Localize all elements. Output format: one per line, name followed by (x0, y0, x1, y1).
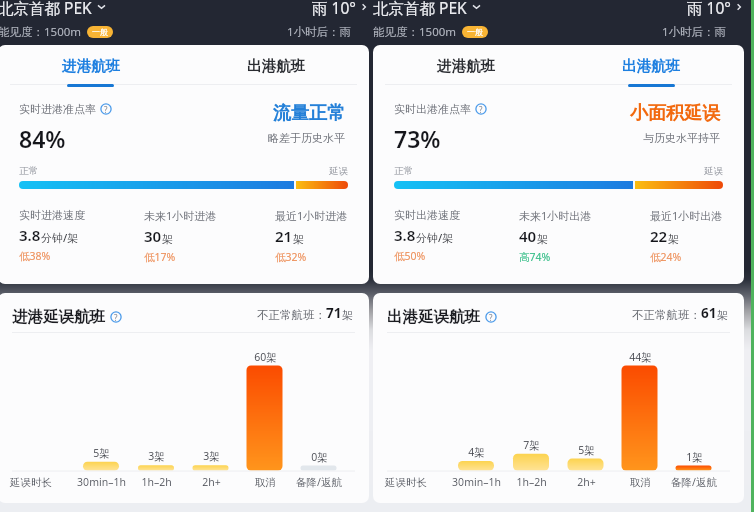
staticText: ? (479, 104, 483, 115)
staticText: 架 (537, 232, 548, 246)
staticText: 实时出港准点率 (394, 102, 471, 116)
staticText: 30min–1h (77, 475, 126, 489)
staticText: 0架 (311, 450, 328, 464)
staticText: 低38% (19, 249, 51, 263)
staticText: 能见度：1500m (373, 24, 457, 39)
staticText: 分钟/架 (416, 230, 454, 245)
staticText: 一般 (467, 27, 483, 37)
staticText: 3架 (203, 449, 220, 463)
staticText: 未来1小时出港 (519, 208, 592, 223)
staticText: 架 (162, 232, 173, 246)
staticText: 分钟/架 (41, 230, 79, 245)
staticText: 延误时长 (385, 476, 427, 489)
button[interactable]: 雨 10° (687, 0, 744, 16)
staticText: 取消 (630, 476, 651, 489)
staticText: ? (104, 104, 108, 115)
staticText: 低50% (394, 249, 426, 263)
staticText: 高74% (519, 250, 551, 264)
staticText: 1小时后：雨 (287, 24, 352, 39)
staticText: 低24% (650, 250, 682, 264)
button[interactable]: 进港航班 (373, 45, 558, 87)
staticText: 备降/返航 (671, 475, 717, 489)
staticText: 雨 10° (687, 0, 731, 16)
button[interactable]: 出港航班 (558, 45, 744, 87)
staticText: 与历史水平持平 (643, 131, 720, 145)
staticText: 进港延误航班 (12, 307, 105, 327)
staticText: 出港航班 (247, 57, 305, 75)
staticText: 60架 (254, 350, 277, 364)
button[interactable]: 雨 10° (312, 0, 369, 16)
staticText: 实时出港速度 (394, 208, 460, 222)
staticText: 小面积延误 (630, 102, 720, 125)
staticText: 延误 (704, 165, 723, 177)
staticText: 84% (19, 123, 66, 154)
staticText: 备降/返航 (296, 475, 342, 489)
staticText: 能见度：1500m (0, 24, 82, 39)
staticText: 出港延误航班 (387, 307, 480, 327)
staticText: 延误 (329, 165, 348, 177)
staticText: 30min–1h (452, 475, 501, 489)
staticText: 雨 10° (312, 0, 356, 16)
staticText: 3架 (148, 449, 165, 463)
staticText: 北京首都 PEK (0, 0, 92, 16)
staticText: ? (489, 312, 493, 323)
button[interactable]: 说明 (100, 103, 112, 115)
staticText: 1架 (686, 450, 703, 464)
staticText: 进港航班 (437, 57, 495, 75)
staticText: 正常 (394, 165, 413, 177)
staticText: 实时进港准点率 (19, 102, 96, 116)
staticText: 最近1小时进港 (275, 208, 348, 223)
staticText: 5架 (93, 446, 110, 460)
staticText: 最近1小时出港 (650, 208, 723, 223)
button[interactable]: 说明 (485, 311, 497, 323)
staticText: 5架 (578, 443, 595, 457)
staticText: 1小时后：雨 (662, 24, 727, 39)
staticText: 73% (394, 123, 441, 154)
staticText: 实时进港速度 (19, 208, 85, 222)
staticText: 61 (701, 304, 717, 322)
staticText: 出港航班 (622, 57, 680, 75)
button[interactable]: 说明 (110, 311, 122, 323)
staticText: 2h+ (577, 475, 596, 489)
staticText: 架 (717, 308, 728, 322)
button[interactable]: 出港航班 (183, 45, 369, 87)
staticText: 4架 (468, 445, 485, 459)
staticText: 北京首都 PEK (373, 0, 467, 16)
staticText: 不正常航班： (632, 308, 701, 322)
staticText: 7架 (523, 438, 540, 452)
staticText: 22 (650, 226, 668, 246)
staticText: 延误时长 (10, 476, 52, 489)
staticText: 架 (668, 232, 679, 246)
button[interactable]: 进港航班 (0, 45, 183, 87)
staticText: 进港航班 (62, 57, 120, 75)
staticText: 略差于历史水平 (268, 131, 345, 145)
staticText: 44架 (629, 350, 652, 364)
staticText: ? (114, 312, 118, 323)
staticText: 3.8 (19, 225, 41, 245)
staticText: 一般 (92, 27, 108, 37)
staticText: 21 (275, 226, 293, 246)
staticText: 低32% (275, 250, 307, 264)
staticText: 3.8 (394, 225, 416, 245)
staticText: 2h+ (202, 475, 221, 489)
button[interactable]: 北京首都 PEK (0, 0, 107, 16)
staticText: 40 (519, 226, 537, 246)
staticText: 71 (326, 304, 342, 322)
staticText: 流量正常 (273, 102, 345, 125)
staticText: 1h–2h (516, 475, 547, 489)
staticText: 1h–2h (141, 475, 172, 489)
staticText: 30 (144, 226, 162, 246)
staticText: 架 (293, 232, 304, 246)
button[interactable]: 说明 (475, 103, 487, 115)
staticText: 未来1小时进港 (144, 208, 217, 223)
staticText: 取消 (255, 476, 276, 489)
button[interactable]: 北京首都 PEK (373, 0, 482, 16)
staticText: 低17% (144, 250, 176, 264)
staticText: 不正常航班： (257, 308, 326, 322)
staticText: 正常 (19, 165, 38, 177)
staticText: 架 (342, 308, 353, 322)
